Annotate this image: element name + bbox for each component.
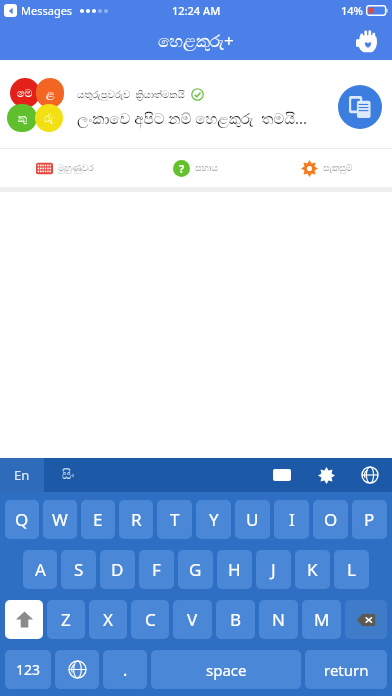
- staticText: ලංකාවෙ අපිට නම් හෙළකුරු තමයි...: [77, 108, 308, 128]
- button[interactable]: ?: [130, 149, 261, 187]
- staticText: T: [170, 508, 180, 531]
- button[interactable]: මුහුණුවර: [0, 149, 130, 187]
- button[interactable]: G: [178, 550, 213, 589]
- button[interactable]: J: [256, 550, 291, 589]
- button[interactable]: Z: [47, 600, 85, 639]
- button[interactable]: Copy: [338, 85, 382, 129]
- button[interactable]: Donate: [350, 23, 384, 57]
- button[interactable]: B: [216, 600, 255, 639]
- button[interactable]: space: [151, 650, 301, 689]
- button[interactable]: K: [295, 550, 330, 589]
- button[interactable]: P: [352, 500, 387, 539]
- staticText: රු: [44, 113, 54, 124]
- button[interactable]: S: [61, 550, 96, 589]
- button[interactable]: E: [81, 500, 115, 539]
- staticText: I: [289, 508, 295, 531]
- staticText: B: [230, 608, 242, 631]
- staticText: En: [14, 466, 30, 484]
- staticText: return: [324, 660, 369, 680]
- button[interactable]: U: [235, 500, 270, 539]
- staticText: S: [74, 558, 84, 581]
- staticText: Z: [61, 608, 71, 631]
- staticText: සිං: [62, 469, 75, 482]
- button[interactable]: Shift: [5, 600, 43, 639]
- staticText: G: [189, 558, 202, 581]
- staticText: P: [364, 508, 375, 531]
- staticText: මෙ: [17, 88, 33, 99]
- button[interactable]: Settings: [304, 458, 348, 492]
- button[interactable]: T: [157, 500, 192, 539]
- staticText: ?: [179, 161, 185, 176]
- button[interactable]: return: [305, 650, 387, 689]
- staticText: U: [246, 508, 259, 531]
- staticText: ළ: [46, 88, 55, 99]
- button[interactable]: සිං: [44, 458, 92, 492]
- button[interactable]: සැකසුම්: [261, 149, 392, 187]
- button[interactable]: W: [43, 500, 77, 539]
- staticText: N: [272, 608, 285, 631]
- button[interactable]: X: [89, 600, 127, 639]
- button[interactable]: O: [313, 500, 348, 539]
- staticText: සැකසුම්: [323, 164, 353, 173]
- staticText: .: [123, 659, 128, 681]
- button[interactable]: Keyboard layout: [260, 458, 304, 492]
- button[interactable]: 123: [5, 650, 51, 689]
- staticText: V: [187, 608, 198, 631]
- staticText: 12:24 AM: [172, 3, 221, 18]
- button[interactable]: A: [23, 550, 57, 589]
- staticText: D: [111, 558, 124, 581]
- staticText: O: [324, 508, 338, 531]
- staticText: සහාය: [195, 164, 218, 173]
- staticText: හෙළකුරු+: [158, 29, 234, 52]
- button[interactable]: V: [173, 600, 212, 639]
- staticText: Q: [15, 508, 29, 531]
- staticText: Messages: [21, 3, 73, 18]
- staticText: H: [228, 558, 241, 581]
- staticText: W: [52, 508, 68, 531]
- button[interactable]: Change language: [55, 650, 99, 689]
- button[interactable]: En: [0, 458, 44, 492]
- staticText: J: [271, 558, 276, 581]
- button[interactable]: .: [103, 650, 147, 689]
- staticText: Y: [209, 508, 219, 531]
- staticText: 123: [16, 660, 41, 679]
- staticText: මුහුණුවර: [58, 164, 94, 173]
- button[interactable]: L: [334, 550, 369, 589]
- staticText: space: [206, 660, 247, 680]
- button[interactable]: Language: [348, 458, 392, 492]
- staticText: 14%: [341, 3, 363, 18]
- button[interactable]: Q: [5, 500, 39, 539]
- button[interactable]: I: [274, 500, 309, 539]
- staticText: C: [145, 608, 156, 631]
- button[interactable]: මෙ: [0, 66, 392, 148]
- staticText: F: [152, 558, 161, 581]
- button[interactable]: F: [139, 550, 174, 589]
- button[interactable]: R: [119, 500, 153, 539]
- button[interactable]: H: [217, 550, 252, 589]
- button[interactable]: D: [100, 550, 135, 589]
- button[interactable]: C: [131, 600, 169, 639]
- staticText: කු: [18, 113, 27, 124]
- button[interactable]: M: [302, 600, 341, 639]
- staticText: K: [307, 558, 318, 581]
- button[interactable]: N: [259, 600, 298, 639]
- staticText: R: [131, 508, 142, 531]
- staticText: යතුරුපුවරුව ක්‍රියාත්මකයි: [77, 87, 185, 101]
- staticText: M: [314, 608, 330, 631]
- staticText: E: [93, 508, 103, 531]
- staticText: X: [103, 608, 113, 631]
- staticText: A: [35, 558, 46, 581]
- button[interactable]: Y: [196, 500, 231, 539]
- button[interactable]: Backspace: [345, 600, 387, 639]
- staticText: L: [347, 558, 356, 581]
